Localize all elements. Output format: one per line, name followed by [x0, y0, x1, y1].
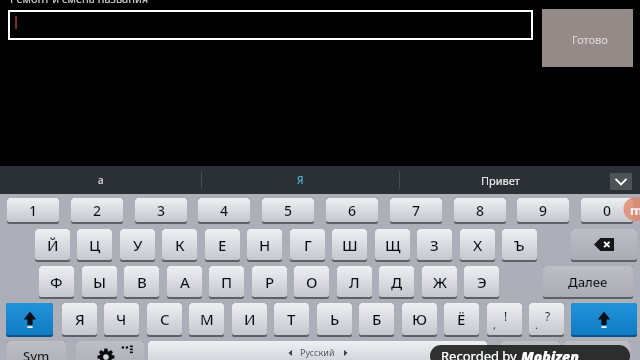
staticText: Готово	[572, 32, 608, 47]
button[interactable]: Shift	[6, 303, 53, 335]
staticText: Ю	[412, 309, 428, 329]
button[interactable]: К	[162, 229, 197, 260]
button[interactable]: 6	[326, 198, 378, 222]
button[interactable]: Й	[35, 229, 70, 260]
button[interactable]: Ё	[444, 303, 479, 335]
button[interactable]: а	[0, 166, 201, 194]
staticText: Далее	[568, 273, 608, 291]
button[interactable]: 9	[517, 198, 569, 222]
staticText: .	[535, 317, 538, 332]
button[interactable]: Д	[379, 266, 414, 297]
button[interactable]: 0	[581, 198, 633, 222]
button[interactable]: С	[147, 303, 182, 335]
staticText: Ь	[330, 309, 340, 329]
staticText: Ч	[116, 309, 127, 329]
button[interactable]: 3	[135, 198, 187, 222]
button[interactable]: Ф	[39, 266, 74, 297]
button[interactable]: И	[232, 303, 267, 335]
button[interactable]: В	[124, 266, 159, 297]
staticText: Recorded by	[441, 347, 521, 360]
staticText: Щ	[385, 235, 401, 255]
button[interactable]: Emoji	[500, 341, 560, 360]
staticText: Ы	[93, 272, 107, 292]
staticText: 1	[29, 201, 38, 220]
button[interactable]: 7	[390, 198, 442, 222]
button[interactable]: Привет	[399, 166, 601, 194]
staticText: ,	[493, 317, 496, 332]
button[interactable]: 5	[262, 198, 314, 222]
staticText: Русский	[300, 346, 335, 358]
staticText: Й	[47, 235, 59, 255]
staticText: Mobizen	[521, 347, 579, 360]
button[interactable]: Х	[460, 229, 495, 260]
button[interactable]: Ы	[82, 266, 117, 297]
button[interactable]: Я	[201, 166, 399, 194]
staticText: 5	[284, 201, 293, 220]
button[interactable]: 4	[198, 198, 250, 222]
button[interactable]: У	[120, 229, 155, 260]
staticText: Е	[218, 235, 227, 255]
button[interactable]: П	[209, 266, 244, 297]
staticText: m	[630, 201, 640, 219]
button[interactable]: Т	[274, 303, 309, 335]
button[interactable]: Settings	[76, 341, 144, 360]
staticText: !	[504, 308, 508, 324]
button[interactable]: Б	[359, 303, 394, 335]
button[interactable]	[8, 10, 533, 40]
staticText: Ж	[433, 272, 447, 292]
staticText: А	[180, 272, 190, 292]
button[interactable]: Е	[205, 229, 240, 260]
button[interactable]: Ь	[317, 303, 352, 335]
staticText: Н	[259, 235, 271, 255]
button[interactable]: Ч	[104, 303, 139, 335]
button[interactable]: Ц	[77, 229, 112, 260]
button[interactable]: Щ	[375, 229, 410, 260]
staticText: 8	[476, 201, 485, 220]
staticText: К	[175, 235, 185, 255]
button[interactable]: Н	[247, 229, 282, 260]
button[interactable]: Э	[464, 266, 499, 297]
button[interactable]: Mobizen	[623, 197, 640, 221]
button[interactable]: З	[417, 229, 452, 260]
staticText: Х	[473, 235, 483, 255]
button[interactable]: А	[167, 266, 202, 297]
staticText: В	[137, 272, 147, 292]
staticText: Ф	[50, 272, 63, 292]
staticText: 0	[603, 201, 612, 220]
staticText: 3	[157, 201, 166, 220]
staticText: 9	[539, 201, 548, 220]
staticText: Я	[297, 173, 304, 187]
button[interactable]: Space	[148, 341, 487, 360]
button[interactable]: Period	[529, 303, 564, 335]
staticText: Д	[391, 272, 403, 292]
staticText: О	[306, 272, 318, 292]
staticText: 7	[412, 201, 421, 220]
staticText: С	[160, 309, 170, 329]
button[interactable]: М	[189, 303, 224, 335]
button[interactable]: Ъ	[502, 229, 537, 260]
button[interactable]: Готово	[542, 9, 633, 67]
button[interactable]: Expand suggestions	[610, 173, 632, 190]
button[interactable]: Shift	[571, 303, 637, 335]
button[interactable]: Comma	[487, 303, 522, 335]
button[interactable]: Г	[290, 229, 325, 260]
staticText: Ц	[89, 235, 101, 255]
button[interactable]: Ю	[402, 303, 437, 335]
button[interactable]: Ж	[422, 266, 457, 297]
button[interactable]: 2	[71, 198, 123, 222]
button[interactable]: Enter	[564, 341, 630, 360]
button[interactable]: Л	[337, 266, 372, 297]
staticText: Л	[349, 272, 360, 292]
button[interactable]: О	[294, 266, 329, 297]
staticText: ?	[545, 308, 551, 324]
button[interactable]: Sym	[7, 341, 66, 360]
button[interactable]: Backspace	[571, 229, 637, 260]
button[interactable]: 1	[7, 198, 59, 222]
button[interactable]: Я	[62, 303, 97, 335]
staticText: Г	[304, 235, 312, 255]
staticText: Ремонт и смена названия	[10, 0, 149, 6]
button[interactable]: Р	[252, 266, 287, 297]
button[interactable]: Далее	[543, 266, 633, 297]
button[interactable]: Ш	[332, 229, 367, 260]
button[interactable]: 8	[454, 198, 506, 222]
